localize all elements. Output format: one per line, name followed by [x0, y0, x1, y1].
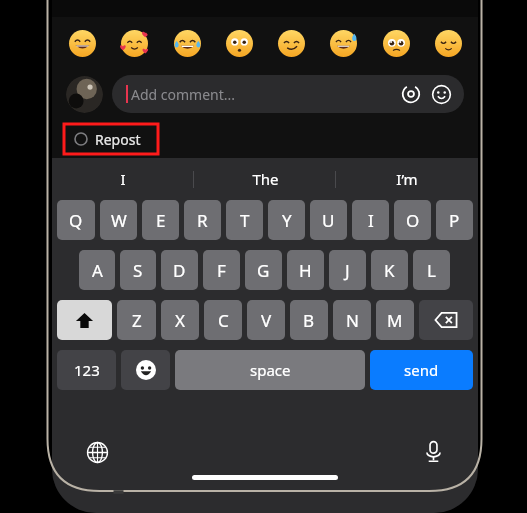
button[interactable]: Change keyboard language [82, 437, 112, 467]
button[interactable]: Voice input [418, 437, 448, 467]
staticText: V [261, 309, 272, 332]
staticText: send [404, 360, 439, 380]
staticText: O [406, 209, 420, 232]
button[interactable]: S [120, 250, 156, 290]
button[interactable]: Repost [64, 124, 158, 154]
button[interactable]: N [333, 300, 371, 340]
staticText: L [427, 259, 436, 282]
button[interactable]: Emoji reaction [275, 27, 307, 59]
button[interactable]: M [376, 300, 414, 340]
button[interactable]: O [394, 200, 431, 240]
staticText: Y [282, 209, 292, 232]
staticText: I [368, 209, 374, 232]
staticText: I’m [396, 169, 418, 189]
staticText: space [250, 360, 291, 380]
button[interactable]: C [204, 300, 242, 340]
button[interactable]: Z [117, 300, 156, 340]
staticText: Q [69, 209, 83, 232]
staticText: M [387, 309, 403, 332]
button[interactable]: Emoji reaction [171, 27, 203, 59]
staticText: N [346, 309, 359, 332]
staticText: S [133, 259, 143, 282]
button[interactable]: L [413, 250, 450, 290]
staticText: 123 [74, 360, 100, 380]
button[interactable]: V [247, 300, 285, 340]
button[interactable]: G [245, 250, 282, 290]
staticText: Add comment... [131, 85, 236, 104]
staticText: E [156, 209, 166, 232]
staticText: Z [132, 309, 142, 332]
button[interactable]: U [310, 200, 347, 240]
button[interactable]: I [352, 200, 389, 240]
staticText: I [120, 169, 126, 189]
button[interactable]: Emoji picker [430, 83, 452, 105]
button[interactable]: space [175, 350, 365, 390]
button[interactable]: Profile picture [66, 76, 103, 113]
button[interactable]: Mention [400, 83, 422, 105]
button[interactable]: 123 [57, 350, 116, 390]
button[interactable]: Y [268, 200, 305, 240]
button[interactable]: I [52, 158, 194, 200]
button[interactable]: J [329, 250, 366, 290]
button[interactable]: Emoji keyboard [121, 350, 170, 390]
button[interactable]: T [226, 200, 263, 240]
staticText: Repost [95, 130, 141, 149]
staticText: K [384, 259, 395, 282]
staticText: W [111, 209, 127, 232]
button[interactable]: Add comment... [112, 75, 464, 113]
button[interactable]: send [370, 350, 473, 390]
button[interactable]: W [100, 200, 137, 240]
button[interactable]: Emoji reaction [66, 27, 98, 59]
button[interactable]: Emoji reaction [223, 27, 255, 59]
button[interactable]: X [161, 300, 199, 340]
button[interactable]: Backspace [419, 300, 473, 340]
button[interactable]: P [436, 200, 473, 240]
staticText: R [197, 209, 208, 232]
staticText: The [252, 169, 279, 189]
button[interactable]: B [290, 300, 328, 340]
button[interactable]: I’m [336, 158, 478, 200]
button[interactable]: E [142, 200, 179, 240]
staticText: F [217, 259, 226, 282]
staticText: P [449, 209, 460, 232]
staticText: C [218, 309, 229, 332]
staticText: A [92, 259, 103, 282]
staticText: G [257, 259, 270, 282]
staticText: J [345, 259, 350, 282]
button[interactable]: Shift [57, 300, 112, 340]
button[interactable]: K [371, 250, 408, 290]
staticText: X [175, 309, 185, 332]
staticText: D [173, 259, 186, 282]
button[interactable]: F [203, 250, 240, 290]
staticText: H [299, 259, 312, 282]
staticText: B [303, 309, 315, 332]
button[interactable]: Emoji reaction [432, 27, 464, 59]
staticText: T [240, 209, 250, 232]
button[interactable]: Emoji reaction [380, 27, 412, 59]
button[interactable]: Emoji reaction [327, 27, 359, 59]
staticText: U [322, 209, 335, 232]
button[interactable]: R [184, 200, 221, 240]
button[interactable]: The [194, 158, 336, 200]
button[interactable]: A [79, 250, 115, 290]
button[interactable]: D [161, 250, 198, 290]
button[interactable]: H [287, 250, 324, 290]
button[interactable]: Q [57, 200, 95, 240]
button[interactable]: Emoji reaction [118, 27, 150, 59]
